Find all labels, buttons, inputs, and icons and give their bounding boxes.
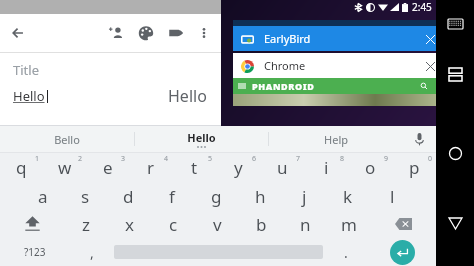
staticText: 1 xyxy=(35,154,40,164)
button[interactable]: k xyxy=(326,182,370,210)
staticText: , xyxy=(90,243,94,262)
staticText: p xyxy=(409,156,420,179)
staticText: . xyxy=(344,243,348,262)
staticText: g xyxy=(211,185,222,208)
staticText: Hello xyxy=(168,85,207,107)
button[interactable]: o xyxy=(348,153,392,182)
button[interactable]: . xyxy=(323,238,368,266)
staticText: e xyxy=(103,156,113,179)
button[interactable]: j xyxy=(282,182,326,210)
button[interactable]: p xyxy=(392,153,436,182)
button[interactable]: u xyxy=(260,153,304,182)
staticText: x xyxy=(125,213,134,236)
staticText: q xyxy=(16,156,27,179)
staticText: f xyxy=(169,185,175,208)
staticText: a xyxy=(38,185,48,208)
button[interactable]: Voice input xyxy=(402,126,436,152)
staticText: y xyxy=(234,156,243,179)
button[interactable]: i xyxy=(304,153,348,182)
staticText: j xyxy=(302,185,307,208)
staticText: c xyxy=(169,213,178,236)
button[interactable]: , xyxy=(69,238,114,266)
button[interactable]: e xyxy=(86,153,129,182)
staticText: 9 xyxy=(384,154,389,164)
button[interactable]: z xyxy=(64,210,107,238)
button[interactable]: ?123 xyxy=(0,238,69,266)
button[interactable]: Label xyxy=(161,18,191,48)
staticText: t xyxy=(191,156,198,179)
button[interactable]: b xyxy=(239,210,283,238)
staticText: h xyxy=(255,185,266,208)
staticText: w xyxy=(58,156,72,179)
button[interactable]: Bello xyxy=(0,126,134,152)
button[interactable]: EarlyBird xyxy=(240,26,439,51)
button[interactable]: Add person xyxy=(101,18,131,48)
staticText: Help xyxy=(324,132,348,147)
staticText: Bello xyxy=(54,132,80,147)
button[interactable]: Back xyxy=(0,14,38,52)
staticText: d xyxy=(123,185,134,208)
button[interactable]: Enter xyxy=(368,238,436,266)
button[interactable]: More options xyxy=(191,20,217,46)
button[interactable]: v xyxy=(195,210,239,238)
button[interactable]: Close Chrome xyxy=(421,57,439,75)
staticText: l xyxy=(390,185,395,208)
button[interactable]: q xyxy=(0,153,43,182)
staticText: o xyxy=(365,156,376,179)
staticText: PHANDROID xyxy=(252,80,315,92)
staticText: u xyxy=(277,156,288,179)
button[interactable]: g xyxy=(194,182,238,210)
button[interactable]: Delete xyxy=(371,210,436,238)
button[interactable]: Back xyxy=(442,210,468,236)
button[interactable]: Close EarlyBird xyxy=(421,30,439,48)
button[interactable]: Color palette xyxy=(131,18,161,48)
button[interactable]: d xyxy=(107,182,150,210)
staticText: ?123 xyxy=(24,245,46,259)
staticText: 4 xyxy=(164,154,169,164)
button[interactable]: Chrome xyxy=(240,53,439,78)
staticText: 6 xyxy=(252,154,257,164)
button[interactable]: Recent apps xyxy=(443,62,467,86)
staticText: n xyxy=(300,213,311,236)
staticText: z xyxy=(82,213,90,236)
button[interactable]: s xyxy=(64,182,107,210)
button[interactable]: Title xyxy=(13,61,39,79)
button[interactable]: f xyxy=(150,182,194,210)
button[interactable]: Help xyxy=(269,126,402,152)
button[interactable]: Hello xyxy=(135,126,268,152)
button[interactable]: a xyxy=(21,182,64,210)
staticText: b xyxy=(256,213,267,236)
button[interactable]: c xyxy=(151,210,195,238)
button[interactable]: l xyxy=(370,182,414,210)
staticText: 2 xyxy=(78,154,83,164)
button[interactable]: n xyxy=(283,210,327,238)
button[interactable]: Hide keyboard xyxy=(443,12,467,36)
staticText: 0 xyxy=(428,154,433,164)
button[interactable]: t xyxy=(172,153,216,182)
staticText: 7 xyxy=(296,154,301,164)
staticText: v xyxy=(213,213,222,236)
staticText: s xyxy=(81,185,90,208)
button[interactable]: Hello xyxy=(0,85,221,107)
staticText: 3 xyxy=(121,154,126,164)
staticText: m xyxy=(341,213,357,236)
staticText: EarlyBird xyxy=(264,31,311,46)
button[interactable]: m xyxy=(327,210,371,238)
button[interactable]: r xyxy=(129,153,172,182)
staticText: 2:45 xyxy=(412,0,432,14)
staticText: Hello xyxy=(187,130,216,145)
button[interactable]: Home xyxy=(442,140,468,166)
staticText: r xyxy=(147,156,155,179)
staticText: 5 xyxy=(208,154,213,164)
staticText: Chrome xyxy=(264,58,306,73)
button[interactable]: h xyxy=(238,182,282,210)
button[interactable]: w xyxy=(43,153,86,182)
button[interactable]: y xyxy=(216,153,260,182)
staticText: i xyxy=(324,156,329,179)
staticText: Hello xyxy=(13,87,45,105)
button[interactable]: x xyxy=(107,210,151,238)
button[interactable]: Shift xyxy=(0,210,64,238)
staticText: k xyxy=(343,185,353,208)
staticText: 8 xyxy=(340,154,345,164)
